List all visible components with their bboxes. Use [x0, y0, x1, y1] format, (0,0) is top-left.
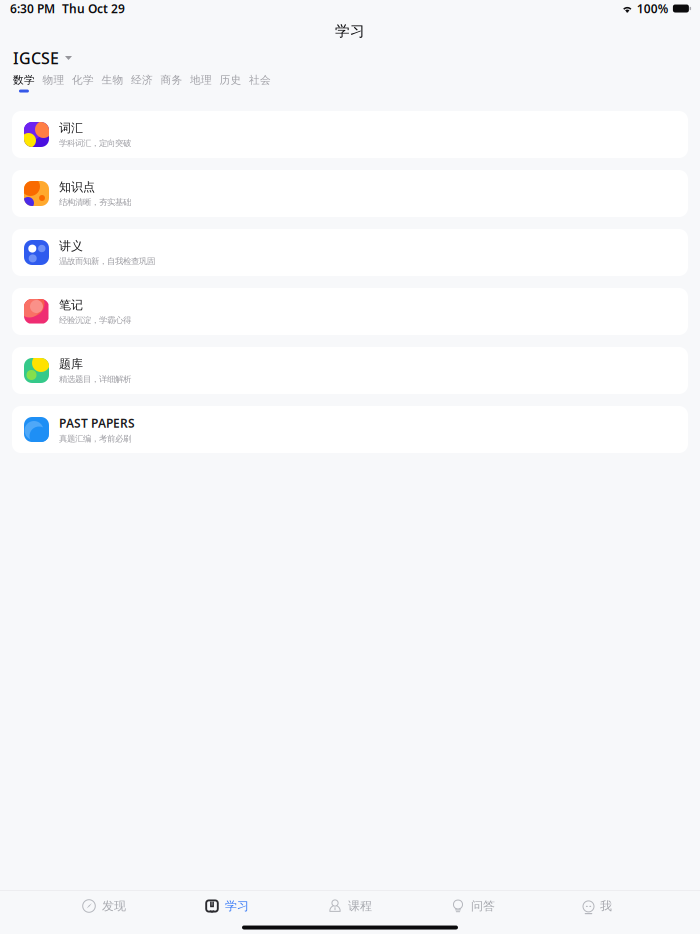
staticText: 我 [600, 899, 612, 913]
staticText: 数学 [13, 73, 35, 86]
staticText: 温故而知新，自我检查巩固 [59, 256, 155, 266]
staticText: 课程 [348, 899, 372, 913]
button[interactable]: 词汇 [12, 111, 688, 158]
staticText: 真题汇编，考前必刷 [59, 434, 131, 444]
staticText: 笔记 [59, 298, 83, 312]
button[interactable]: 经济 [127, 71, 157, 95]
staticText: 生物 [101, 73, 123, 86]
staticText: 学习 [335, 22, 365, 40]
staticText: 词汇 [59, 121, 83, 135]
staticText: 讲义 [59, 239, 83, 253]
button[interactable]: IGCSE [13, 47, 72, 69]
button[interactable]: 我 [534, 891, 657, 921]
staticText: 社会 [249, 73, 271, 86]
button[interactable]: 商务 [157, 71, 186, 95]
staticText: 物理 [42, 73, 64, 86]
button[interactable]: 数学 [9, 71, 39, 95]
staticText: 学科词汇，定向突破 [59, 138, 131, 148]
button[interactable]: 生物 [98, 71, 127, 95]
staticText: PAST PAPERS [59, 415, 135, 431]
button[interactable]: 社会 [245, 71, 275, 95]
button[interactable]: 地理 [186, 71, 216, 95]
staticText: 经济 [131, 73, 153, 86]
staticText: 题库 [59, 357, 83, 371]
button[interactable]: 发现 [42, 891, 165, 921]
button[interactable]: 知识点 [12, 170, 688, 217]
button[interactable]: 化学 [68, 71, 98, 95]
staticText: 100% [637, 0, 669, 16]
button[interactable]: 题库 [12, 347, 688, 394]
button[interactable]: 课程 [288, 891, 411, 921]
button[interactable]: 讲义 [12, 229, 688, 276]
staticText: IGCSE [13, 47, 59, 69]
staticText: 历史 [219, 73, 241, 86]
staticText: 知识点 [59, 180, 95, 194]
button[interactable]: PAST PAPERS [12, 406, 688, 453]
staticText: 地理 [190, 73, 212, 86]
staticText: 商务 [160, 73, 182, 86]
button[interactable]: 问答 [411, 891, 534, 921]
staticText: Thu Oct 29 [62, 0, 125, 16]
button[interactable]: 历史 [216, 71, 245, 95]
button[interactable]: 物理 [39, 71, 68, 95]
staticText: 问答 [471, 899, 495, 913]
staticText: 化学 [72, 73, 94, 86]
staticText: 结构清晰，夯实基础 [59, 197, 131, 207]
staticText: 6:30 PM [10, 0, 55, 16]
button[interactable]: 笔记 [12, 288, 688, 335]
button[interactable]: 学习 [165, 891, 288, 921]
staticText: 经验沉淀，学霸心得 [59, 315, 131, 325]
staticText: 精选题目，详细解析 [59, 374, 131, 384]
staticText: 学习 [225, 899, 249, 913]
staticText: 发现 [102, 899, 126, 913]
